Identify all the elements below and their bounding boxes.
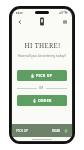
- staticText: PICK UP: [16, 129, 29, 133]
- staticText: ORDER: [38, 98, 52, 103]
- staticText: HI THERE!: [24, 41, 61, 50]
- staticText: $0.00: [52, 129, 61, 133]
- button[interactable]: PICK UP: [12, 124, 72, 137]
- button[interactable]: ORDER: [17, 95, 67, 106]
- staticText: PICK UP: [36, 73, 53, 78]
- button[interactable]: PICK UP: [17, 70, 67, 81]
- button[interactable]: Back: [15, 17, 24, 26]
- staticText: How will you be ordering today?: [17, 54, 67, 58]
- button[interactable]: Logo: [39, 17, 45, 26]
- staticText: OR: [39, 86, 44, 90]
- button[interactable]: Menu: [60, 17, 69, 26]
- other: Cart: [63, 128, 68, 133]
